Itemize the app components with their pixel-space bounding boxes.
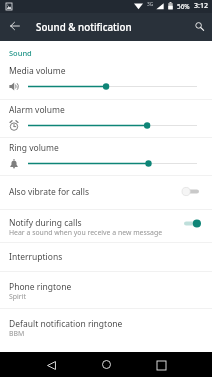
button[interactable]: Notify during calls (0, 209, 212, 242)
staticText: Spirit (9, 292, 26, 301)
button[interactable]: Alarm volume (0, 99, 212, 137)
button[interactable]: Also vibrate for calls (0, 175, 212, 209)
staticText: Notify during calls (9, 217, 82, 229)
staticText: Hear a sound when you receive a new mess… (9, 228, 163, 237)
staticText: Alarm volume (9, 104, 65, 116)
button[interactable]: Back (39, 353, 63, 377)
button[interactable]: Back (3, 14, 27, 38)
button[interactable]: Media volume (0, 60, 212, 99)
staticText: Phone ringtone (9, 281, 72, 293)
staticText: 3G (147, 1, 154, 8)
button[interactable]: Search (187, 14, 211, 38)
button[interactable]: Default notification ringtone (0, 308, 212, 345)
staticText: Default notification ringtone (9, 318, 123, 330)
button[interactable]: Recent apps (149, 353, 173, 377)
staticText: Ring volume (9, 142, 59, 154)
button[interactable]: Phone ringtone (0, 271, 212, 308)
staticText: 3:12 (194, 1, 208, 11)
staticText: BBM (9, 329, 25, 338)
staticText: Media volume (9, 65, 66, 77)
staticText: Sound (9, 48, 32, 58)
staticText: Also vibrate for calls (9, 186, 90, 198)
staticText: Sound & notification (36, 21, 132, 34)
staticText: Interruptions (9, 251, 63, 263)
staticText: 56% (177, 2, 190, 11)
button[interactable]: Home (94, 352, 118, 376)
button[interactable]: Ring volume (0, 137, 212, 175)
button[interactable]: Interruptions (0, 242, 212, 271)
